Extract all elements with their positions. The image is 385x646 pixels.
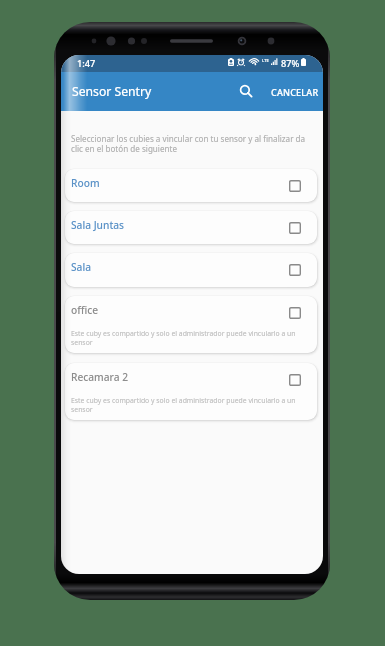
staticText: Sensor Sentry bbox=[72, 83, 152, 100]
button[interactable]: Recamara 2 bbox=[65, 363, 317, 420]
staticText: Este cuby es compartido y solo el admini… bbox=[71, 329, 298, 347]
staticText: CANCELAR bbox=[271, 86, 319, 98]
button[interactable]: CANCELAR bbox=[264, 76, 323, 108]
staticText: Seleccionar los cubies a vincular con tu… bbox=[71, 133, 315, 154]
button[interactable]: Buscar bbox=[232, 77, 262, 107]
staticText: Recamara 2 bbox=[71, 370, 128, 384]
button[interactable]: Room bbox=[65, 169, 317, 202]
button[interactable]: office bbox=[65, 296, 317, 353]
staticText: Sala Juntas bbox=[71, 218, 125, 232]
staticText: office bbox=[71, 303, 99, 317]
button[interactable]: Sala Juntas bbox=[65, 211, 317, 244]
staticText: Este cuby es compartido y solo el admini… bbox=[71, 396, 298, 414]
button[interactable]: Sala bbox=[65, 253, 317, 287]
staticText: Room bbox=[71, 176, 100, 190]
staticText: Sala bbox=[71, 260, 92, 274]
staticText: LTE bbox=[262, 58, 269, 64]
staticText: 1:47 bbox=[77, 57, 96, 70]
staticText: 87% bbox=[281, 57, 300, 70]
